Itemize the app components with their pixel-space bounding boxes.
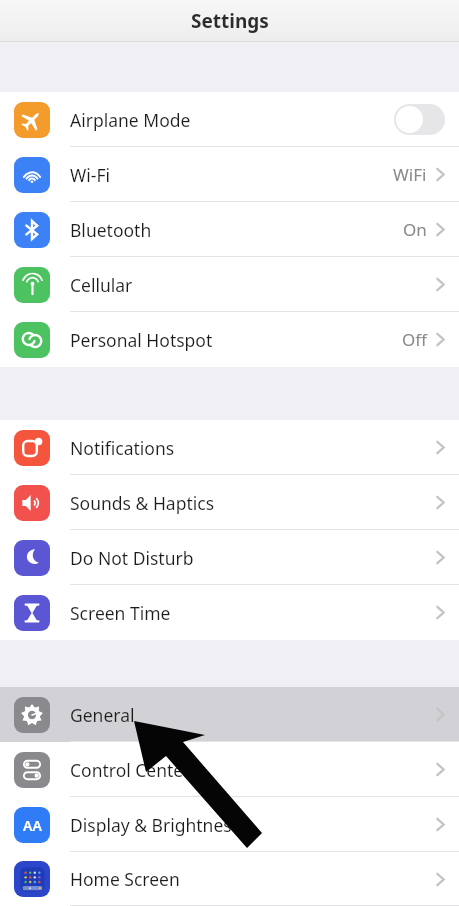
button[interactable]: Personal Hotspot: [0, 312, 459, 367]
button[interactable]: Home Screen: [0, 852, 459, 906]
button[interactable]: General: [0, 687, 459, 742]
staticText: Settings: [191, 8, 269, 34]
button[interactable]: AA: [0, 797, 459, 852]
staticText: Bluetooth: [70, 218, 403, 242]
staticText: Control Center: [70, 758, 436, 782]
staticText: Personal Hotspot: [70, 328, 402, 352]
staticText: WiFi: [393, 163, 427, 186]
button[interactable]: Airplane Mode toggle: [394, 104, 445, 135]
button[interactable]: Bluetooth: [0, 202, 459, 257]
button[interactable]: Sounds & Haptics: [0, 475, 459, 530]
button[interactable]: Screen Time: [0, 585, 459, 640]
button[interactable]: Airplane Mode: [0, 92, 459, 147]
staticText: Wi-Fi: [70, 163, 393, 187]
button[interactable]: Cellular: [0, 257, 459, 312]
staticText: Cellular: [70, 273, 436, 297]
button[interactable]: Control Center: [0, 742, 459, 797]
staticText: Display & Brightness: [70, 813, 436, 837]
staticText: On: [403, 218, 427, 241]
staticText: General: [70, 703, 436, 727]
button[interactable]: Notifications: [0, 420, 459, 475]
staticText: Off: [402, 328, 427, 351]
staticText: Sounds & Haptics: [70, 491, 436, 515]
button[interactable]: Do Not Disturb: [0, 530, 459, 585]
staticText: Do Not Disturb: [70, 546, 436, 570]
staticText: Home Screen: [70, 867, 436, 891]
staticText: Notifications: [70, 436, 436, 460]
button[interactable]: Wi-Fi: [0, 147, 459, 202]
staticText: Airplane Mode: [70, 108, 394, 132]
staticText: AA: [23, 816, 42, 835]
staticText: Screen Time: [70, 601, 436, 625]
